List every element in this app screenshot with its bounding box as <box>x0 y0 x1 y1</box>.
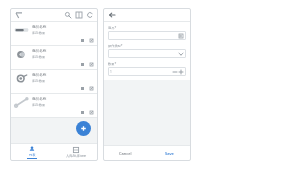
button[interactable]: Columns <box>74 10 83 19</box>
button[interactable]: Scan barcode <box>108 31 186 40</box>
staticText: 商品名称 <box>32 25 47 30</box>
button[interactable]: Filter <box>14 10 23 19</box>
button[interactable]: 商品名称 <box>10 22 98 46</box>
button[interactable]: Edit <box>88 37 94 43</box>
button[interactable]: Back <box>107 10 116 19</box>
button[interactable]: 1 <box>108 67 186 76</box>
staticText: 库存:数量 <box>32 79 46 83</box>
button[interactable]: List tab <box>10 144 54 161</box>
staticText: 商品名称 <box>32 73 47 78</box>
staticText: 入库/出库记录 <box>66 154 87 158</box>
staticText: 商品名称 <box>32 97 47 102</box>
staticText: 商品* <box>108 26 117 30</box>
button[interactable]: 商品名称 <box>10 46 98 70</box>
button[interactable]: Refresh <box>85 10 94 19</box>
button[interactable]: Delete <box>79 109 85 115</box>
button[interactable]: Cancel <box>103 146 147 161</box>
staticText: 库存:数量 <box>32 31 46 35</box>
staticText: 数量* <box>108 62 117 66</box>
button[interactable]: Save <box>147 146 191 161</box>
staticText: 库存:数量 <box>32 103 46 107</box>
button[interactable]: 商品名称 <box>10 70 98 94</box>
staticText: Cancel <box>119 151 132 156</box>
staticText: 商品名称 <box>32 49 47 54</box>
button[interactable]: Scan barcode <box>178 33 184 39</box>
staticText: 库存:数量 <box>32 55 46 59</box>
button[interactable]: History tab <box>54 144 98 161</box>
button[interactable]: Edit <box>88 61 94 67</box>
button[interactable]: Open dropdown <box>178 51 184 57</box>
staticText: 1 <box>110 70 172 74</box>
button[interactable]: Open dropdown <box>108 49 186 58</box>
button[interactable]: Edit <box>88 85 94 91</box>
staticText: Save <box>165 151 174 156</box>
button[interactable]: Edit <box>88 109 94 115</box>
staticText: 操作类型* <box>108 44 123 48</box>
button[interactable]: Add <box>76 121 91 136</box>
button[interactable]: Delete <box>79 37 85 43</box>
button[interactable]: Search <box>63 10 72 19</box>
button[interactable]: 商品名称 <box>10 94 98 118</box>
button[interactable]: Delete <box>79 61 85 67</box>
staticText: 列表 <box>29 153 36 157</box>
button[interactable]: Delete <box>79 85 85 91</box>
button[interactable]: Increase <box>178 69 184 75</box>
button[interactable]: Decrease <box>172 69 178 75</box>
